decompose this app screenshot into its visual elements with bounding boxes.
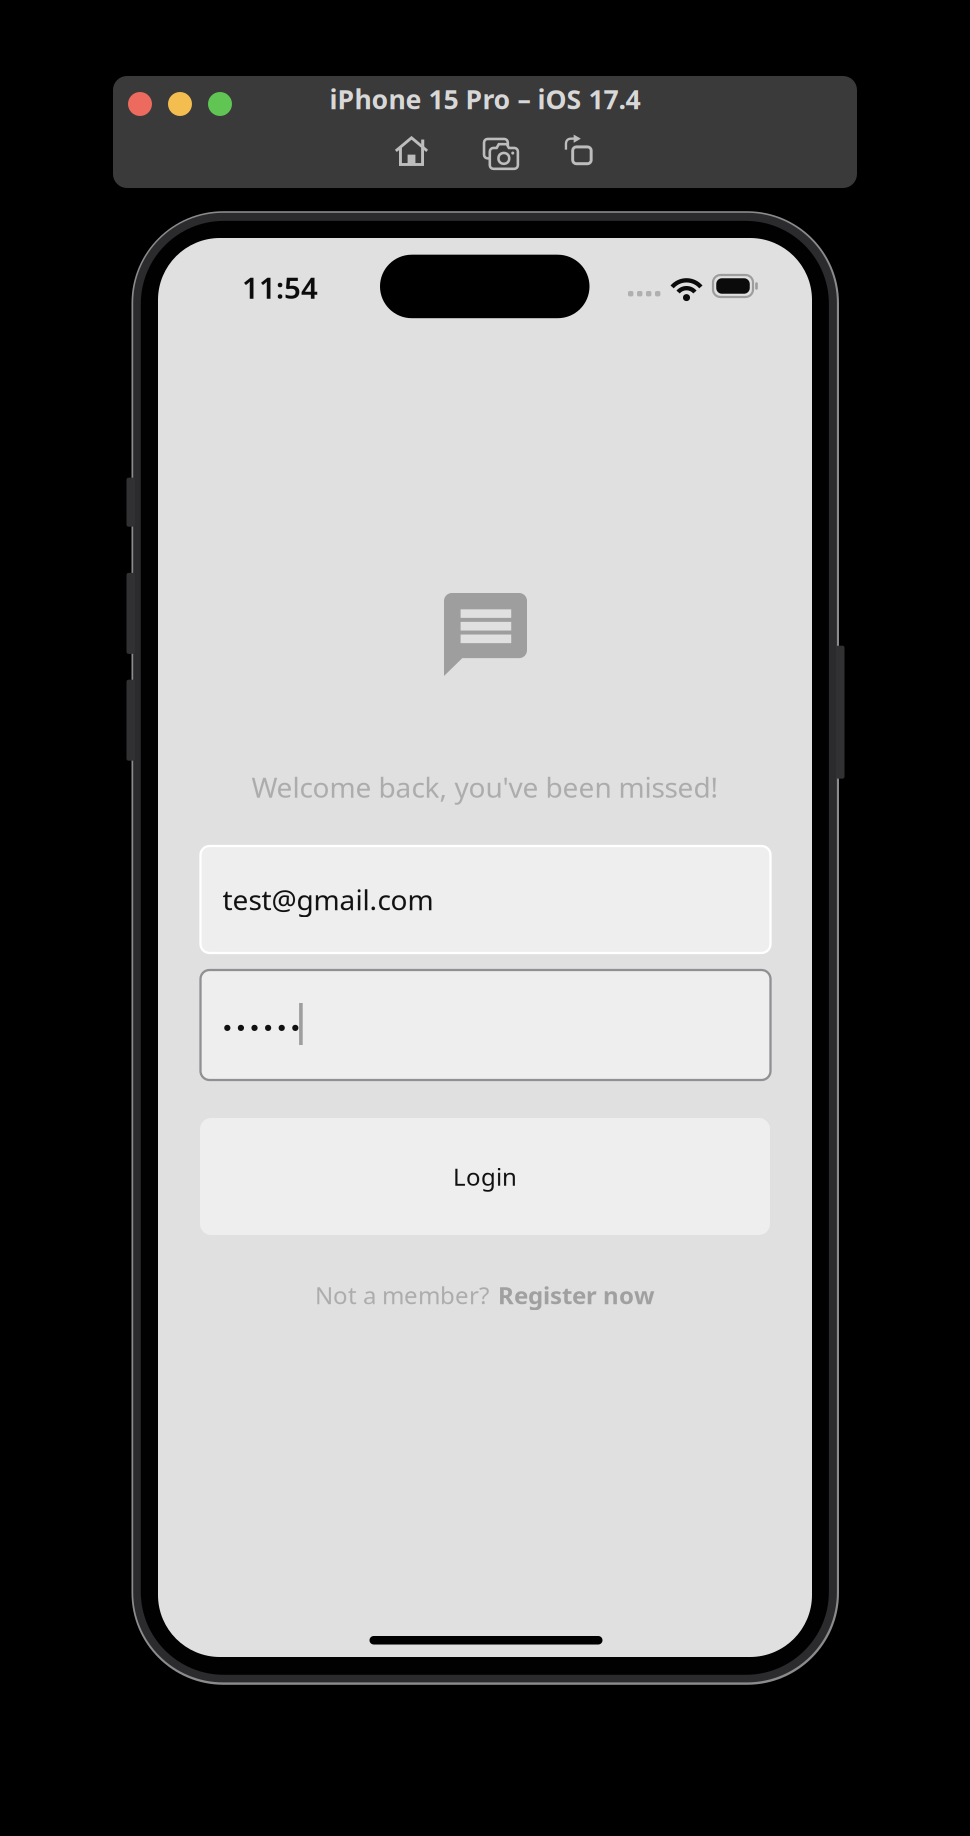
staticText: 11:54 (242, 268, 318, 307)
button[interactable]: Close (128, 92, 152, 116)
staticText: test@gmail.com (222, 881, 433, 918)
button[interactable]: Home (394, 134, 428, 168)
button[interactable]: Login (200, 1118, 770, 1235)
staticText: Welcome back, you've been missed! (251, 768, 718, 806)
button[interactable]: Not a member? (158, 1279, 812, 1311)
button[interactable]: Minimise (168, 92, 192, 116)
staticText: Login (453, 1161, 517, 1192)
staticText: Register now (498, 1279, 655, 1311)
button[interactable]: Zoom (208, 92, 232, 116)
button[interactable]: Rotate (564, 136, 592, 164)
staticText: iPhone 15 Pro – iOS 17.4 (329, 81, 640, 117)
button[interactable]: Password (200, 970, 770, 1080)
button[interactable]: Email (200, 846, 770, 953)
staticText: Not a member? (315, 1279, 489, 1311)
button[interactable]: Screenshot (483, 136, 519, 172)
